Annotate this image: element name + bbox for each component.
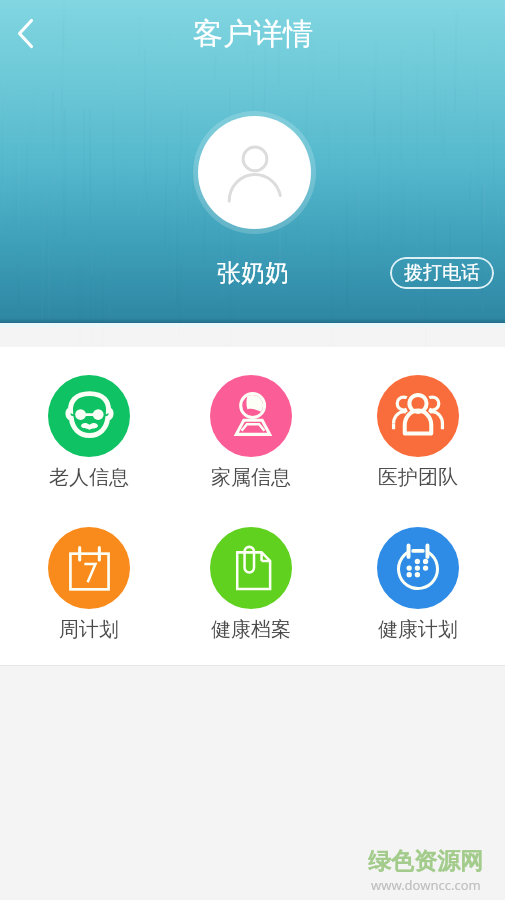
button[interactable]: 拨打电话 — [390, 257, 494, 289]
staticText: www.downcc.com — [371, 876, 481, 894]
staticText: 健康档案 — [211, 617, 291, 642]
staticText: 老人信息 — [49, 465, 129, 490]
staticText: 张奶奶 — [217, 258, 289, 288]
button[interactable]: 医护团队 — [358, 375, 478, 490]
button[interactable]: Back — [1, 9, 49, 57]
button[interactable]: 老人信息 — [29, 375, 149, 490]
button[interactable]: 家属信息 — [191, 375, 311, 490]
staticText: 拨打电话 — [404, 261, 480, 285]
staticText: 周计划 — [59, 617, 119, 642]
button[interactable]: 健康档案 — [191, 527, 311, 642]
button[interactable]: 健康计划 — [358, 527, 478, 642]
staticText: 医护团队 — [378, 465, 458, 490]
staticText: 家属信息 — [211, 465, 291, 490]
staticText: 绿色资源网 — [368, 847, 483, 876]
staticText: 健康计划 — [378, 617, 458, 642]
button[interactable]: 周计划 — [29, 527, 149, 642]
staticText: 客户详情 — [193, 15, 313, 53]
